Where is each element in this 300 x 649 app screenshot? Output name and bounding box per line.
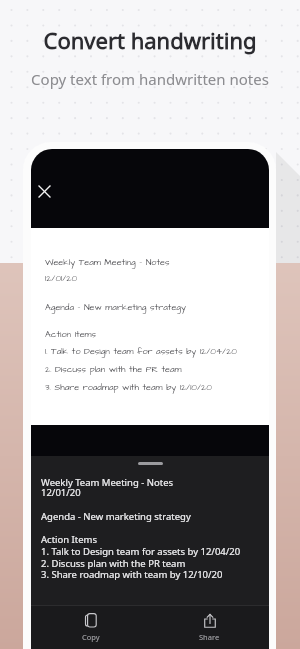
staticText: 3. Share roadmap with team by 12/10/20 bbox=[45, 381, 212, 394]
staticText: 2. Discuss plan with the PR team bbox=[45, 363, 182, 376]
staticText: 1. Talk to Design team for assets by 12/… bbox=[45, 345, 238, 358]
staticText: Agenda - New marketing strategy bbox=[41, 510, 191, 523]
staticText: Convert handwriting bbox=[0, 25, 300, 55]
staticText: Weekly Team Meeting - Notes bbox=[41, 476, 174, 489]
staticText: Copy bbox=[82, 632, 100, 642]
staticText: Copy text from handwritten notes bbox=[0, 69, 300, 89]
button[interactable]: Copy bbox=[60, 611, 122, 644]
staticText: 3. Share roadmap with team by 12/10/20 bbox=[41, 568, 223, 581]
staticText: Share bbox=[199, 632, 220, 642]
staticText: 1. Talk to Design team for assets by 12/… bbox=[41, 545, 241, 558]
staticText: Action Items bbox=[41, 533, 98, 546]
staticText: Agenda - New marketing strategy bbox=[45, 301, 186, 314]
button[interactable]: Share bbox=[177, 611, 242, 644]
staticText: 12/01/20 bbox=[41, 486, 81, 499]
staticText: 2. Discuss plan with the PR team bbox=[41, 557, 186, 570]
button[interactable]: Close bbox=[33, 180, 55, 202]
staticText: Action Items bbox=[45, 328, 97, 341]
staticText: 12/01/20 bbox=[45, 272, 78, 285]
staticText: Weekly Team Meeting - Notes bbox=[45, 256, 170, 269]
